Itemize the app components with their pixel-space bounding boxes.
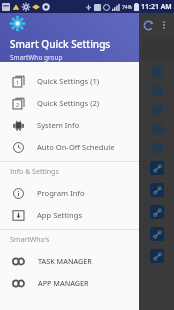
button[interactable]: 2 — [0, 92, 139, 114]
staticText: SmartWho's — [10, 235, 50, 245]
staticText: Smart Quick Settings — [10, 37, 111, 51]
staticText: App Settings — [37, 210, 83, 220]
button[interactable]: App Settings — [0, 204, 139, 226]
button[interactable]: TASK MANAGER — [0, 250, 139, 272]
button[interactable]: Refresh — [139, 16, 157, 34]
staticText: TASK MANAGER — [38, 256, 92, 266]
staticText: Auto On-Off Schedule — [37, 142, 115, 152]
staticText: 11:21 AM — [141, 2, 172, 12]
button[interactable]: 1 — [0, 70, 139, 92]
staticText: 1 — [16, 79, 20, 86]
staticText: Quick Settings (2) — [37, 98, 100, 108]
button[interactable]: APP MANAGER — [0, 272, 139, 294]
staticText: SmartWho group — [10, 53, 63, 62]
staticText: Quick Settings (1) — [37, 76, 100, 86]
staticText: System Info — [37, 120, 80, 130]
staticText: Info & Settings — [10, 167, 59, 177]
button[interactable]: Program Info — [0, 182, 139, 204]
button[interactable]: More options — [157, 18, 171, 32]
button[interactable]: Auto On-Off Schedule — [0, 136, 139, 158]
button[interactable]: System Info — [0, 114, 139, 136]
staticText: Program Info — [37, 188, 85, 198]
staticText: 2 — [16, 101, 20, 108]
staticText: 74% — [122, 4, 132, 11]
staticText: APP MANAGER — [38, 278, 89, 288]
